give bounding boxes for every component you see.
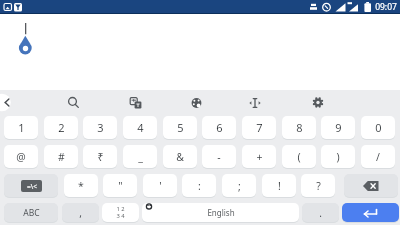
staticText: 3 [97,120,104,135]
staticText: . [319,206,322,220]
button[interactable]: _ [123,145,157,168]
button[interactable] [344,174,398,197]
staticText: 5 [177,120,184,135]
button[interactable]: 4 [123,116,157,139]
button[interactable]: . [302,203,339,222]
staticText: @ [16,150,26,164]
button[interactable] [342,203,399,222]
button[interactable]: 1 2 3 4 [102,203,139,222]
button[interactable]: 8 [282,116,316,139]
staticText: =\< [27,182,37,191]
staticText: 6 [216,120,223,135]
button[interactable]: 9 [321,116,355,139]
button[interactable] [124,91,146,114]
button[interactable]: ? [301,174,335,197]
button[interactable]: 1 [4,116,38,139]
staticText: ' [159,179,162,193]
button[interactable]: @ [4,145,38,168]
button[interactable]: & [163,145,197,168]
button[interactable]: 2 [44,116,78,139]
staticText: 8 [296,120,303,135]
button[interactable] [186,91,208,114]
staticText: & [176,150,184,164]
button[interactable]: # [44,145,78,168]
button[interactable]: 7 [242,116,276,139]
staticText: ₹ [97,150,104,164]
staticText: _ [138,150,143,164]
staticText: # [58,150,65,164]
staticText: + [256,150,263,164]
button[interactable]: ; [222,174,256,197]
button[interactable]: 6 [202,116,236,139]
button[interactable]: / [361,145,395,168]
staticText: / [376,150,380,164]
staticText: 0 [375,120,382,135]
staticText: ? [316,179,321,193]
button[interactable]: ' [143,174,177,197]
staticText: 09:07 [375,1,397,13]
staticText: ! [278,179,281,193]
button[interactable]: 3 [83,116,117,139]
button[interactable]: : [182,174,216,197]
button[interactable] [244,91,266,114]
button[interactable]: + [242,145,276,168]
button[interactable] [307,91,329,114]
staticText: 4 [137,120,144,135]
button[interactable]: , [62,203,99,222]
button[interactable]: ₹ [83,145,117,168]
button[interactable] [0,92,14,112]
staticText: 7 [256,120,263,135]
button[interactable]: English [142,203,299,222]
staticText: 2 [58,120,65,135]
button[interactable]: * [64,174,98,197]
staticText: ( [297,150,301,164]
button[interactable] [62,91,84,114]
staticText: 1 2 3 4 [116,205,125,220]
button[interactable]: ABC [4,203,58,222]
button[interactable]: ) [321,145,355,168]
staticText: 1 [18,120,25,135]
button[interactable]: ( [282,145,316,168]
staticText: , [79,206,82,220]
button[interactable]: 5 [163,116,197,139]
staticText: ; [238,179,241,193]
staticText: ABC [23,207,40,219]
staticText: ) [336,150,340,164]
staticText: * [78,179,84,193]
staticText: - [217,150,221,164]
button[interactable]: " [103,174,137,197]
staticText: English [207,207,235,218]
button[interactable]: ! [262,174,296,197]
button[interactable]: =\< [4,174,58,197]
button[interactable]: 0 [361,116,395,139]
button[interactable]: - [202,145,236,168]
staticText: " [118,179,123,193]
staticText: 9 [335,120,342,135]
staticText: : [198,179,201,193]
